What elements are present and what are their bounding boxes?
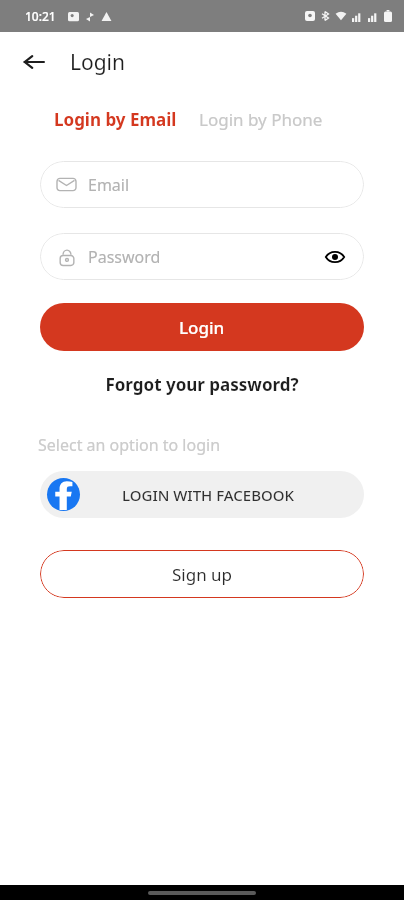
staticText: Login by Phone	[199, 108, 323, 131]
button[interactable]: LOGIN WITH FACEBOOK	[40, 471, 364, 518]
staticText: Select an option to login	[38, 434, 221, 456]
button[interactable]: Back	[12, 40, 56, 84]
button[interactable]: Login by Email	[54, 102, 177, 137]
staticText: Login	[179, 316, 225, 339]
button[interactable]: Login	[40, 303, 364, 351]
staticText: Login by Email	[54, 108, 177, 131]
staticText: Login	[70, 48, 126, 77]
button[interactable]: Sign up	[40, 550, 364, 598]
staticText: 10:21	[25, 8, 56, 24]
button[interactable]: Show password	[322, 244, 348, 270]
staticText: Password	[88, 246, 161, 268]
button[interactable]: Password	[40, 233, 364, 280]
button[interactable]: Forgot your password?	[0, 369, 404, 400]
button[interactable]: Email	[40, 161, 364, 208]
staticText: LOGIN WITH FACEBOOK	[122, 485, 295, 505]
staticText: Email	[88, 174, 130, 196]
button[interactable]: Login by Phone	[199, 102, 323, 137]
staticText: Sign up	[172, 563, 233, 586]
